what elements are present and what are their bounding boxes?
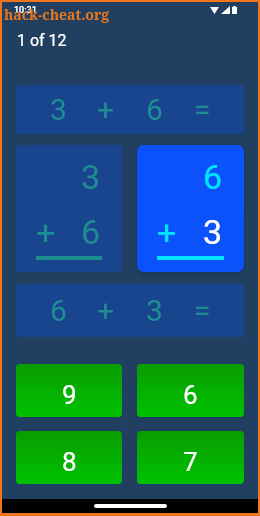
staticText: 10:31 xyxy=(14,5,37,16)
button[interactable]: 3 xyxy=(16,85,244,134)
staticText: 8 xyxy=(62,447,77,477)
staticText: 3 xyxy=(177,212,222,252)
button[interactable]: 6 xyxy=(137,145,244,272)
other: Battery xyxy=(232,6,237,14)
staticText: 6 xyxy=(146,92,163,127)
staticText: 6 xyxy=(56,212,100,252)
staticText: 6 xyxy=(50,293,67,328)
button[interactable]: 8 xyxy=(16,431,122,484)
button[interactable]: 7 xyxy=(137,431,244,484)
staticText: 3 xyxy=(50,92,67,127)
staticText: + xyxy=(97,293,115,328)
staticText: 3 xyxy=(146,293,163,328)
staticText: 6 xyxy=(137,157,222,197)
staticText: + xyxy=(97,92,115,127)
staticText: + xyxy=(36,212,56,252)
other: Wi-Fi xyxy=(210,6,219,14)
staticText: = xyxy=(194,293,211,328)
button[interactable]: 3 xyxy=(16,145,122,272)
staticText: 3 xyxy=(16,157,100,197)
button[interactable]: 9 xyxy=(16,364,122,417)
button[interactable]: 6 xyxy=(16,284,244,337)
staticText: 9 xyxy=(62,380,77,410)
other: Cellular signal xyxy=(221,6,230,14)
staticText: 6 xyxy=(183,380,198,410)
staticText: + xyxy=(157,212,177,252)
staticText: hack-cheat.org xyxy=(4,5,110,24)
button[interactable]: 6 xyxy=(137,364,244,417)
staticText: = xyxy=(194,92,211,127)
staticText: 7 xyxy=(183,447,198,477)
staticText: 1 of 12 xyxy=(17,31,67,50)
